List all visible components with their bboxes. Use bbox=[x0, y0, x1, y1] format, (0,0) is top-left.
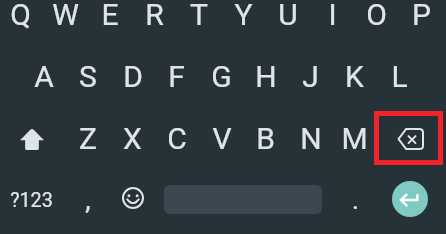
staticText: H bbox=[255, 59, 277, 94]
staticText: . bbox=[352, 185, 359, 215]
staticText: O bbox=[366, 0, 387, 32]
button[interactable]: . bbox=[333, 169, 378, 231]
button[interactable]: ?123 bbox=[0, 169, 65, 231]
button[interactable]: K bbox=[332, 45, 377, 107]
button[interactable]: Q bbox=[0, 0, 43, 45]
button[interactable]: N bbox=[288, 107, 333, 169]
staticText: C bbox=[167, 121, 187, 156]
button[interactable]: Z bbox=[65, 107, 110, 169]
button[interactable]: R bbox=[132, 0, 177, 45]
button[interactable]: M bbox=[332, 107, 377, 169]
staticText: G bbox=[211, 59, 232, 94]
button[interactable]: C bbox=[154, 107, 199, 169]
staticText: W bbox=[52, 0, 79, 32]
button[interactable]: Y bbox=[221, 0, 266, 45]
button[interactable]: Shift bbox=[0, 108, 65, 170]
staticText: X bbox=[123, 121, 142, 156]
staticText: K bbox=[345, 59, 364, 94]
staticText: Z bbox=[79, 121, 97, 156]
button[interactable]: J bbox=[288, 45, 333, 107]
staticText: Q bbox=[10, 0, 31, 32]
staticText: A bbox=[34, 59, 54, 94]
staticText: ?123 bbox=[10, 189, 53, 212]
button[interactable]: W bbox=[43, 0, 88, 45]
button[interactable]: Emoji bbox=[110, 167, 155, 229]
staticText: D bbox=[123, 59, 143, 94]
button[interactable]: P bbox=[399, 0, 444, 45]
button[interactable]: V bbox=[199, 107, 244, 169]
staticText: I bbox=[328, 0, 337, 32]
button[interactable]: I bbox=[310, 0, 355, 45]
staticText: R bbox=[145, 0, 164, 32]
button[interactable]: A bbox=[21, 45, 66, 107]
button[interactable]: B bbox=[243, 107, 288, 169]
button[interactable]: D bbox=[110, 45, 155, 107]
button[interactable]: X bbox=[110, 107, 155, 169]
button[interactable]: T bbox=[176, 0, 221, 45]
staticText: F bbox=[168, 59, 185, 94]
staticText: M bbox=[341, 121, 368, 156]
staticText: Y bbox=[234, 0, 253, 32]
staticText: P bbox=[412, 0, 431, 32]
button[interactable]: H bbox=[243, 45, 288, 107]
staticText: V bbox=[212, 121, 232, 156]
button[interactable]: U bbox=[265, 0, 310, 45]
button[interactable]: G bbox=[199, 45, 244, 107]
button[interactable]: E bbox=[87, 0, 132, 45]
staticText: E bbox=[101, 0, 119, 32]
staticText: T bbox=[190, 0, 208, 32]
button[interactable]: L bbox=[377, 45, 422, 107]
button[interactable]: Backspace bbox=[377, 108, 444, 170]
staticText: L bbox=[391, 59, 408, 94]
staticText: , bbox=[85, 184, 91, 216]
button[interactable]: S bbox=[65, 45, 110, 107]
staticText: J bbox=[302, 59, 319, 94]
button[interactable]: , bbox=[65, 169, 110, 231]
staticText: S bbox=[79, 59, 97, 94]
staticText: N bbox=[300, 121, 322, 156]
button[interactable]: F bbox=[154, 45, 199, 107]
staticText: B bbox=[256, 121, 275, 156]
button[interactable]: Enter bbox=[392, 181, 428, 217]
staticText: U bbox=[278, 0, 298, 32]
button[interactable]: O bbox=[354, 0, 399, 45]
